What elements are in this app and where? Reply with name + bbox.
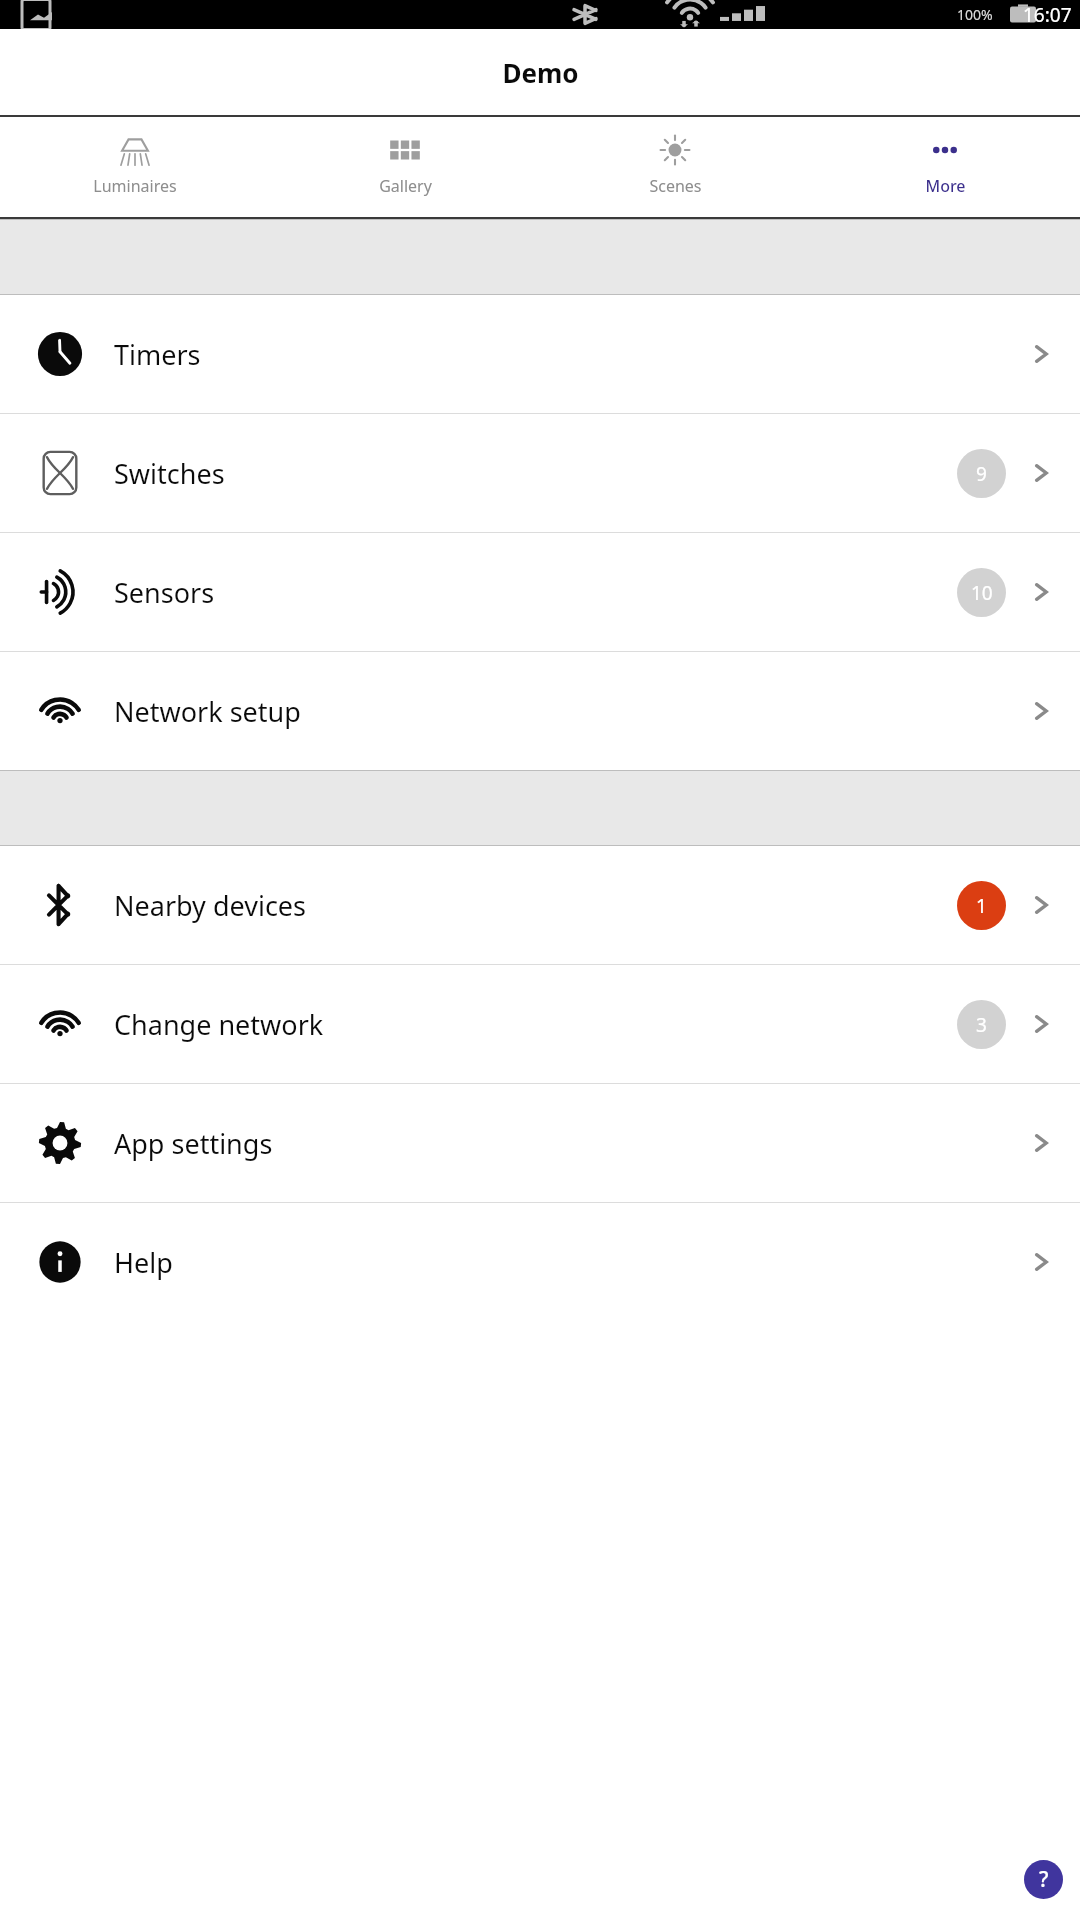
button[interactable]: Luminaires xyxy=(0,117,270,217)
staticText: 100% xyxy=(957,5,993,24)
staticText: Network setup xyxy=(114,693,301,730)
staticText: 9 xyxy=(976,461,987,487)
staticText: Help xyxy=(114,1244,173,1281)
staticText: 16:07 xyxy=(1023,2,1072,28)
staticText: Sensors xyxy=(114,574,215,611)
button[interactable]: Nearby devices xyxy=(0,846,1080,964)
button[interactable]: Change network xyxy=(0,965,1080,1083)
staticText: App settings xyxy=(114,1125,273,1162)
staticText: Demo xyxy=(502,55,579,90)
staticText: Gallery xyxy=(379,175,432,197)
staticText: Change network xyxy=(114,1006,324,1043)
staticText: ? xyxy=(1039,1865,1049,1894)
button[interactable]: Scenes xyxy=(540,117,810,217)
staticText: 10 xyxy=(971,580,993,606)
button[interactable]: Help xyxy=(1024,1860,1063,1899)
staticText: Scenes xyxy=(649,175,702,197)
button[interactable]: Timers xyxy=(0,295,1080,413)
staticText: Luminaires xyxy=(93,175,177,197)
staticText: Switches xyxy=(114,455,225,492)
button[interactable]: More xyxy=(810,117,1080,217)
staticText: 3 xyxy=(976,1012,987,1038)
button[interactable]: Sensors xyxy=(0,533,1080,651)
staticText: Nearby devices xyxy=(114,887,306,924)
staticText: 1 xyxy=(976,893,987,919)
button[interactable]: Switches xyxy=(0,414,1080,532)
staticText: Timers xyxy=(114,336,201,373)
button[interactable]: Help xyxy=(0,1203,1080,1321)
button[interactable]: Network setup xyxy=(0,652,1080,770)
button[interactable]: Gallery xyxy=(270,117,540,217)
button[interactable]: App settings xyxy=(0,1084,1080,1202)
staticText: More xyxy=(925,175,966,197)
